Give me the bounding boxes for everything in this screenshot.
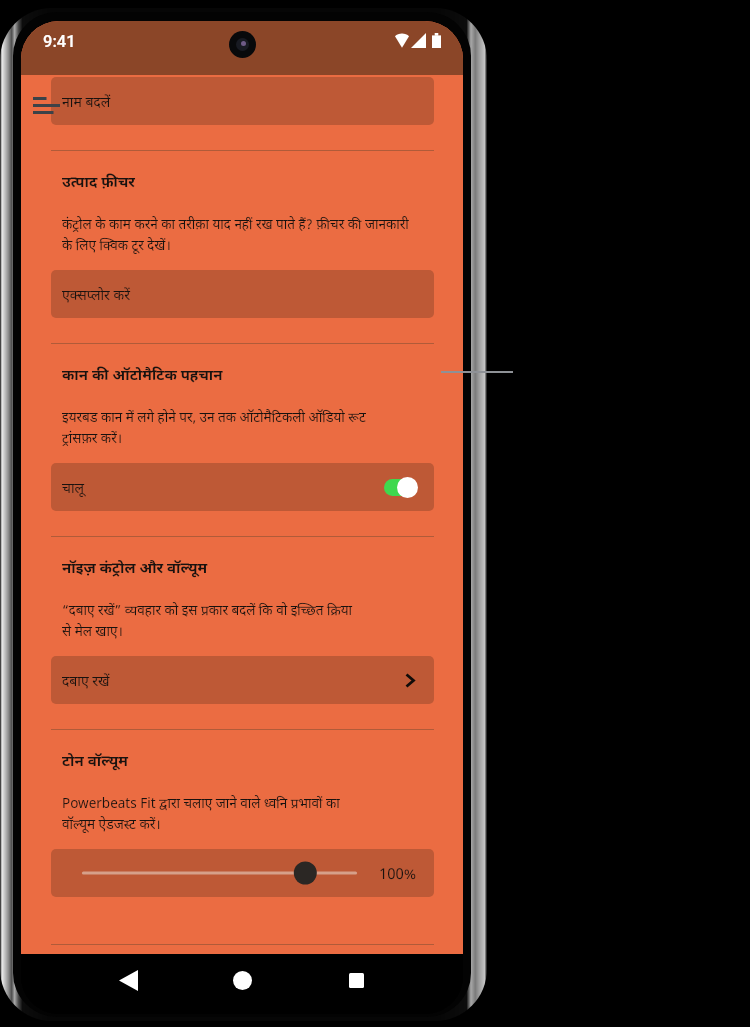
button[interactable]: दबाए रखें	[51, 656, 434, 704]
button[interactable]: चालू	[51, 463, 434, 511]
staticText: 100%	[379, 863, 417, 883]
staticText: कंट्रोल के काम करने का तरीक़ा याद नहीं र…	[62, 215, 409, 254]
staticText: चालू	[62, 478, 84, 497]
staticText: नाम बदलें	[62, 92, 111, 111]
staticText: नॉइज़ कंट्रोल और वॉल्यूम	[62, 557, 208, 577]
staticText: “दबाए रखें” व्यवहार को इस प्रकार बदलें क…	[62, 601, 353, 640]
staticText: दबाए रखें	[62, 671, 110, 690]
staticText: टोन वॉल्यूम	[62, 750, 128, 770]
button[interactable]: Back	[106, 958, 150, 1002]
staticText: उत्पाद फ़ीचर	[62, 171, 135, 191]
button[interactable]: एक्सप्लोर करें	[51, 270, 434, 318]
staticText: एक्सप्लोर करें	[62, 285, 130, 304]
staticText: इयरबड कान में लगे होने पर, उन तक ऑटोमैटि…	[62, 408, 366, 447]
button[interactable]: Home	[220, 958, 264, 1002]
staticText: कान की ऑटोमैटिक पहचान	[62, 364, 223, 384]
staticText: Powerbeats Fit द्वारा चलाए जाने वाले ध्व…	[62, 794, 340, 833]
button[interactable]: नाम बदलें	[51, 77, 434, 125]
button[interactable]: 100%	[51, 849, 434, 897]
other: Open	[406, 674, 414, 687]
staticText: 9:41	[43, 32, 76, 51]
other: Rename	[33, 97, 60, 114]
button[interactable]: Recent apps	[334, 958, 378, 1002]
